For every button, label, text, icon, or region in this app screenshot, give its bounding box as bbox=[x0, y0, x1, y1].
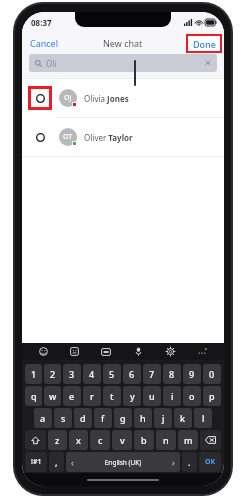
staticText: m bbox=[184, 434, 193, 446]
staticText: x bbox=[76, 434, 81, 446]
staticText: › bbox=[172, 456, 175, 468]
button[interactable]: OJ bbox=[22, 79, 224, 117]
button[interactable]: Cancel bbox=[22, 34, 67, 52]
button[interactable]: u bbox=[143, 386, 161, 406]
button[interactable]: 8 bbox=[163, 364, 181, 384]
button[interactable]: o bbox=[183, 386, 201, 406]
button[interactable]: x bbox=[69, 430, 88, 450]
button[interactable]: Done bbox=[188, 36, 220, 51]
button[interactable]: g bbox=[114, 408, 132, 428]
staticText: 3 bbox=[69, 368, 75, 380]
staticText: 9 bbox=[189, 368, 195, 380]
button[interactable]: e bbox=[63, 386, 81, 406]
staticText: i bbox=[171, 390, 174, 402]
button[interactable]: m bbox=[178, 430, 198, 450]
staticText: n bbox=[163, 434, 169, 446]
button[interactable]: r bbox=[83, 386, 101, 406]
button[interactable]: OK bbox=[199, 452, 221, 472]
staticText: Cancel bbox=[30, 37, 59, 49]
staticText: , bbox=[55, 456, 58, 468]
staticText: d bbox=[80, 412, 86, 424]
button[interactable]: v bbox=[112, 430, 132, 450]
button[interactable]: , bbox=[49, 452, 64, 472]
button[interactable]: 1 bbox=[25, 364, 42, 384]
button[interactable]: Backspace bbox=[200, 430, 221, 450]
staticText: y bbox=[130, 390, 135, 402]
staticText: OK bbox=[205, 457, 216, 467]
button[interactable]: OT bbox=[22, 118, 224, 156]
staticText: 6 bbox=[129, 368, 135, 380]
button[interactable]: 9 bbox=[183, 364, 201, 384]
button[interactable]: d bbox=[74, 408, 92, 428]
button[interactable]: i bbox=[163, 386, 181, 406]
button[interactable]: n bbox=[156, 430, 176, 450]
staticText: g bbox=[120, 412, 126, 424]
staticText: s bbox=[61, 412, 66, 424]
button[interactable]: GIF bbox=[90, 343, 122, 360]
staticText: v bbox=[120, 434, 125, 446]
staticText: . bbox=[188, 456, 191, 468]
staticText: l bbox=[202, 412, 205, 424]
staticText: Olivia Jones bbox=[84, 93, 129, 104]
button[interactable]: p bbox=[203, 386, 221, 406]
button[interactable]: c bbox=[90, 430, 110, 450]
button[interactable]: Oli bbox=[29, 54, 217, 72]
staticText: Oliver Taylor bbox=[84, 132, 133, 143]
button[interactable]: More options bbox=[186, 343, 218, 360]
staticText: e bbox=[69, 390, 75, 402]
button[interactable]: !#1 bbox=[25, 452, 47, 472]
button[interactable]: b bbox=[134, 430, 154, 450]
button[interactable]: Emoji bbox=[28, 343, 59, 360]
staticText: b bbox=[141, 434, 147, 446]
button[interactable]: w bbox=[44, 386, 61, 406]
button[interactable]: Voice input bbox=[122, 343, 154, 360]
button[interactable]: h bbox=[134, 408, 152, 428]
staticText: j bbox=[162, 412, 165, 424]
staticText: f bbox=[101, 412, 105, 424]
button[interactable]: q bbox=[25, 386, 42, 406]
staticText: OT bbox=[63, 132, 73, 142]
staticText: English (UK) bbox=[74, 458, 172, 467]
staticText: o bbox=[189, 390, 195, 402]
button[interactable]: y bbox=[123, 386, 141, 406]
staticText: 5 bbox=[109, 368, 115, 380]
staticText: ‹ bbox=[71, 456, 74, 468]
button[interactable]: a bbox=[34, 408, 52, 428]
staticText: t bbox=[110, 390, 114, 402]
staticText: q bbox=[31, 390, 37, 402]
staticText: a bbox=[40, 412, 46, 424]
button[interactable]: Shift bbox=[25, 430, 46, 450]
staticText: 8 bbox=[169, 368, 175, 380]
staticText: 1 bbox=[31, 368, 37, 380]
staticText: w bbox=[49, 390, 57, 402]
button[interactable]: 2 bbox=[44, 364, 61, 384]
button[interactable]: ‹ bbox=[66, 452, 180, 472]
button[interactable]: 6 bbox=[123, 364, 141, 384]
staticText: OJ bbox=[64, 93, 72, 103]
button[interactable]: l bbox=[194, 408, 212, 428]
staticText: 2 bbox=[50, 368, 56, 380]
button[interactable]: Settings bbox=[154, 343, 186, 360]
staticText: c bbox=[98, 434, 103, 446]
button[interactable]: z bbox=[48, 430, 67, 450]
staticText: New chat bbox=[103, 37, 143, 49]
staticText: p bbox=[209, 390, 215, 402]
button[interactable]: Stickers bbox=[59, 343, 90, 360]
button[interactable]: 7 bbox=[143, 364, 161, 384]
staticText: 4 bbox=[89, 368, 95, 380]
staticText: 0 bbox=[209, 368, 215, 380]
button[interactable]: s bbox=[54, 408, 72, 428]
button[interactable]: . bbox=[182, 452, 197, 472]
button[interactable]: 3 bbox=[63, 364, 81, 384]
button[interactable]: t bbox=[103, 386, 121, 406]
staticText: 08:37 bbox=[31, 17, 52, 28]
staticText: h bbox=[140, 412, 146, 424]
staticText: 7 bbox=[149, 368, 155, 380]
button[interactable]: f bbox=[94, 408, 112, 428]
staticText: !#1 bbox=[31, 457, 42, 467]
button[interactable]: j bbox=[154, 408, 172, 428]
button[interactable]: 4 bbox=[83, 364, 101, 384]
button[interactable]: 0 bbox=[203, 364, 221, 384]
button[interactable]: k bbox=[174, 408, 192, 428]
button[interactable]: 5 bbox=[103, 364, 121, 384]
